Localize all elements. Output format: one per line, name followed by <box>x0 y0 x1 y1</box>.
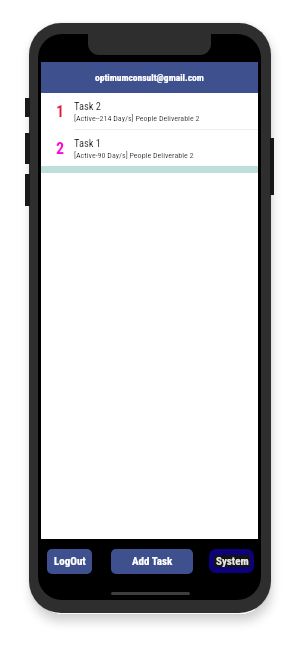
staticText: optimumconsult@gmail.com <box>95 72 204 83</box>
staticText: [Active--214 Day/s] People Deliverable 2 <box>74 114 200 123</box>
button[interactable]: LogOut <box>47 549 92 574</box>
button[interactable]: optimumconsult@gmail.com <box>41 62 258 93</box>
button[interactable]: 2 <box>41 130 258 166</box>
staticText: 2 <box>56 139 65 158</box>
staticText: Add Task <box>132 555 173 568</box>
staticText: System <box>216 555 249 567</box>
staticText: LogOut <box>54 555 86 568</box>
staticText: Task 1 <box>74 137 102 149</box>
staticText: Task 2 <box>74 100 102 112</box>
staticText: 1 <box>56 102 65 121</box>
button[interactable]: Add Task <box>111 549 193 574</box>
button[interactable]: 1 <box>41 93 258 129</box>
button[interactable]: System <box>209 549 254 573</box>
staticText: [Active-90 Day/s] People Deliverable 2 <box>74 151 194 160</box>
